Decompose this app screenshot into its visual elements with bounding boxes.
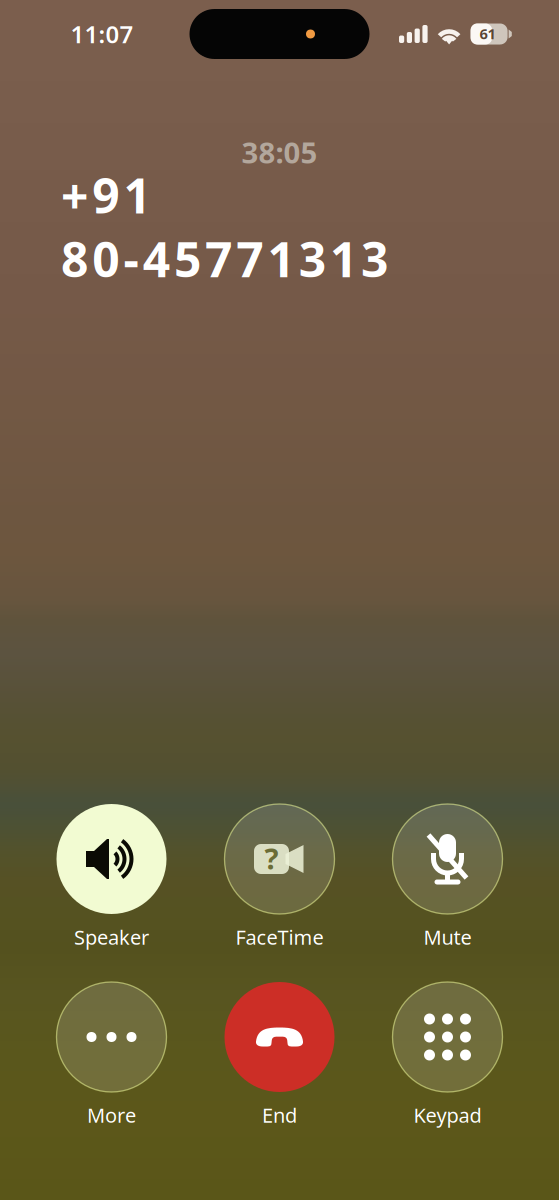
- staticText: End: [262, 1102, 297, 1128]
- staticText: Speaker: [74, 924, 149, 950]
- staticText: +91 80-45771313: [61, 163, 498, 227]
- button[interactable]: More: [36, 982, 186, 1128]
- button[interactable]: Speaker: [36, 804, 186, 950]
- button[interactable]: ?: [204, 804, 354, 950]
- staticText: Keypad: [413, 1102, 481, 1128]
- staticText: ?: [264, 838, 278, 877]
- staticText: 61: [480, 24, 496, 43]
- staticText: 11:07: [70, 18, 133, 50]
- staticText: FaceTime: [235, 924, 323, 950]
- staticText: Mute: [423, 924, 471, 950]
- staticText: More: [87, 1102, 136, 1128]
- button[interactable]: End: [204, 982, 354, 1128]
- staticText: 38:05: [241, 132, 317, 171]
- button[interactable]: Keypad: [372, 982, 522, 1128]
- button[interactable]: Mute: [372, 804, 522, 950]
